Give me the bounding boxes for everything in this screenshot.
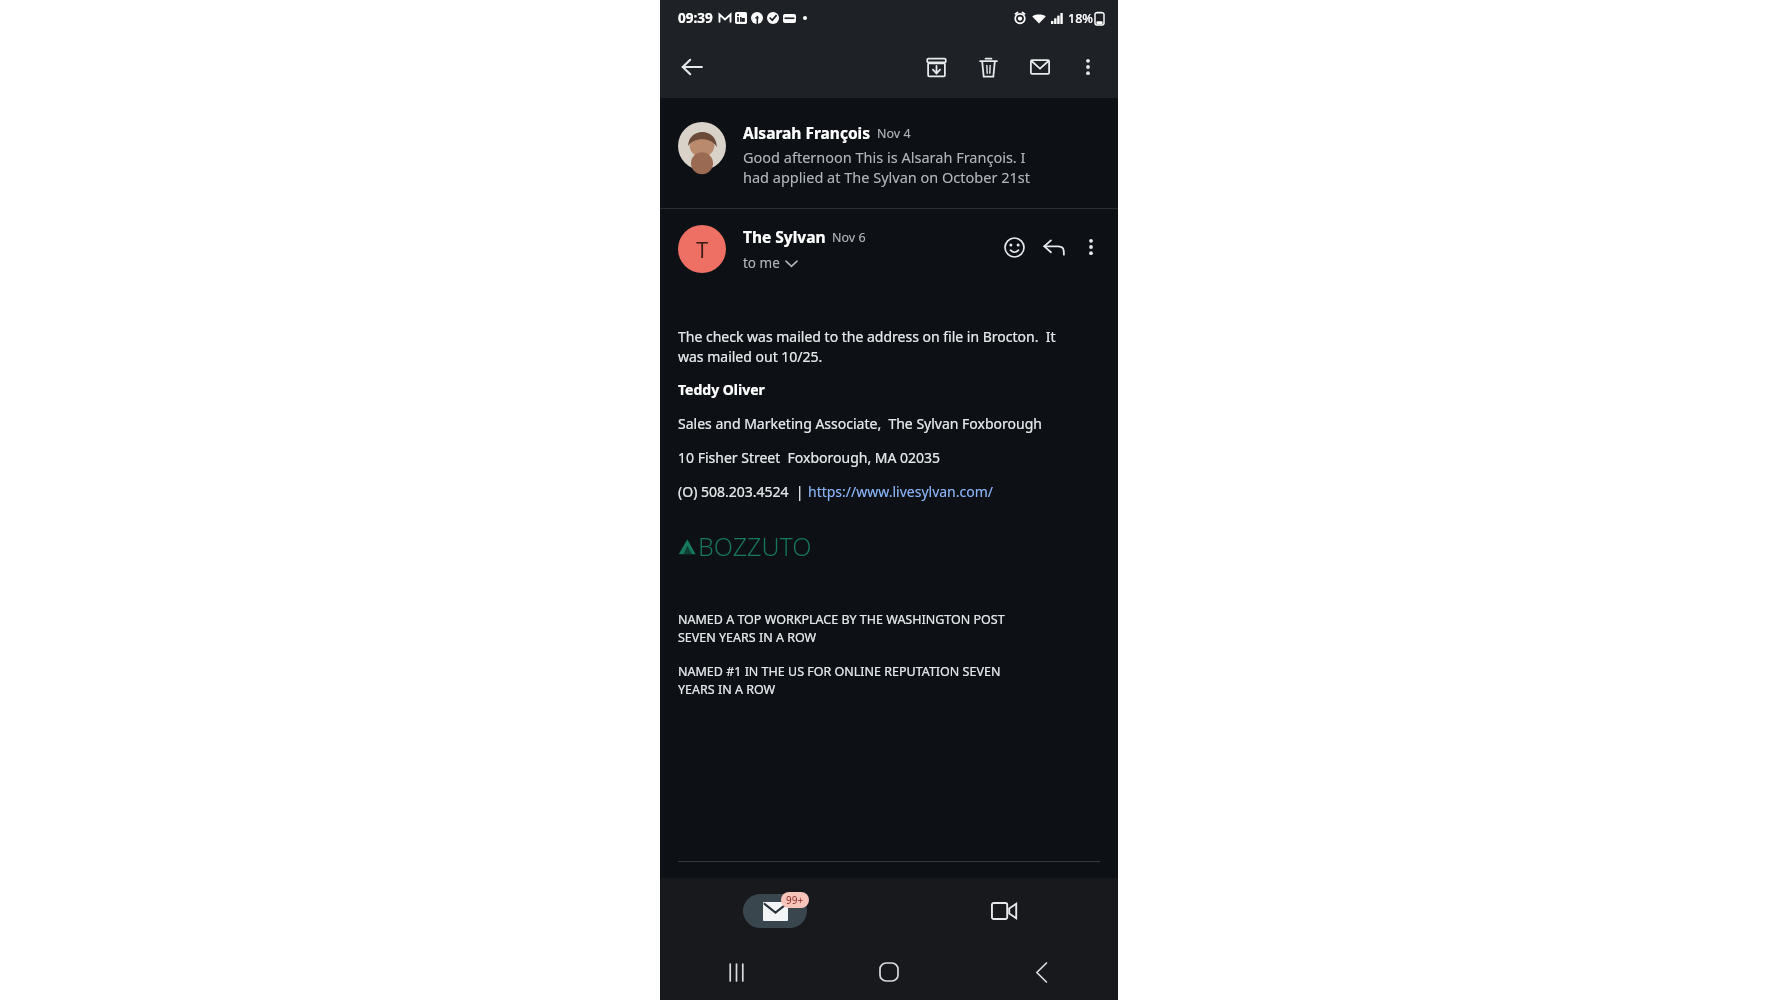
button[interactable]: Delete (966, 45, 1010, 89)
staticText: Good afternoon This is Alsarah François.… (743, 147, 1030, 188)
button[interactable]: Mail (743, 894, 807, 928)
staticText: Alsarah François (743, 122, 871, 143)
button[interactable]: Alsarah François (660, 106, 1118, 208)
button[interactable]: Recent apps (660, 944, 812, 1000)
button[interactable]: T (678, 225, 726, 273)
button[interactable]: Back (965, 944, 1118, 1000)
button[interactable]: Home (812, 944, 965, 1000)
button[interactable]: Back (670, 45, 714, 89)
staticText: 99+ (786, 893, 804, 907)
button[interactable]: Meet (972, 894, 1036, 928)
staticText: The check was mailed to the address on f… (678, 327, 1056, 366)
button[interactable]: More options (1066, 45, 1110, 89)
staticText: Sales and Marketing Associate, The Sylva… (678, 414, 1042, 433)
staticText: NAMED #1 IN THE US FOR ONLINE REPUTATION… (678, 663, 1001, 698)
staticText: 18% (1068, 10, 1093, 27)
staticText: https://www.livesylvan.com/ (808, 482, 993, 501)
staticText: Nov 4 (877, 125, 911, 142)
button[interactable]: Mark unread (1018, 45, 1062, 89)
button[interactable]: More options (1074, 230, 1108, 264)
staticText: NAMED A TOP WORKPLACE BY THE WASHINGTON … (678, 611, 1005, 646)
button[interactable]: Reply (1034, 227, 1074, 267)
button[interactable]: React with emoji (994, 227, 1034, 267)
staticText: 09:39 (678, 9, 713, 27)
staticText: Teddy Oliver (678, 380, 765, 399)
button[interactable]: to me (743, 254, 797, 272)
staticText: 10 Fisher Street Foxborough, MA 02035 (678, 448, 941, 467)
staticText: BOZZUTO (698, 529, 812, 563)
staticText: T (696, 234, 709, 264)
staticText: (O) 508.203.4524 | (678, 482, 808, 501)
staticText: The Sylvan (743, 226, 826, 247)
staticText: Nov 6 (832, 229, 866, 246)
button[interactable]: Archive (914, 45, 958, 89)
button[interactable]: https://www.livesylvan.com/ (808, 482, 993, 501)
staticText: to me (743, 254, 780, 272)
